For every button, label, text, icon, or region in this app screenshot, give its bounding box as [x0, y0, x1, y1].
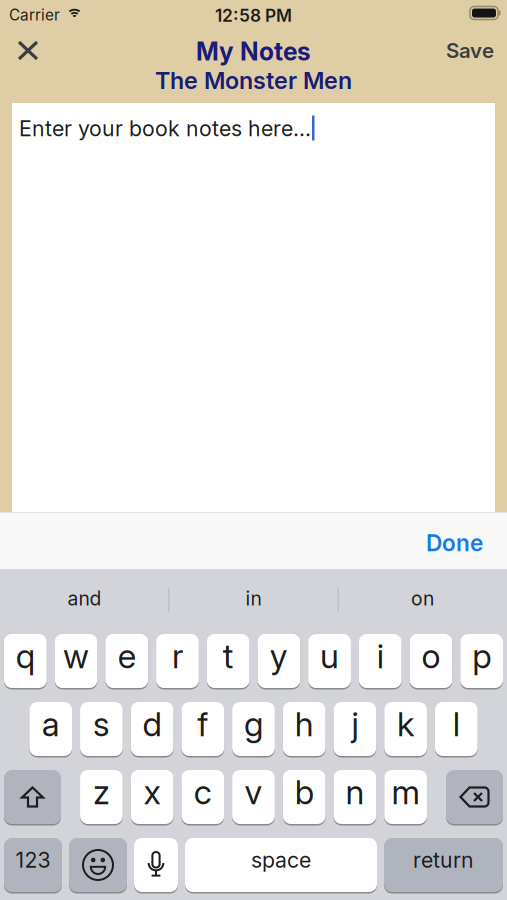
button[interactable]: m: [384, 770, 427, 824]
staticText: v: [244, 772, 262, 812]
staticText: My Notes: [196, 37, 311, 66]
button[interactable]: t: [207, 634, 249, 688]
button[interactable]: o: [410, 634, 452, 688]
button[interactable]: a: [29, 702, 72, 756]
button[interactable]: x: [131, 770, 173, 824]
staticText: g: [244, 704, 263, 744]
button[interactable]: Done: [426, 515, 507, 566]
staticText: 12:58 PM: [215, 5, 292, 26]
button[interactable]: g: [232, 702, 275, 756]
staticText: Done: [426, 529, 483, 557]
button[interactable]: v: [232, 770, 275, 824]
button[interactable]: on: [338, 569, 507, 634]
staticText: i: [377, 636, 384, 676]
button[interactable]: h: [283, 702, 326, 756]
button[interactable]: Save: [446, 30, 507, 71]
staticText: h: [295, 704, 314, 744]
button[interactable]: q: [4, 634, 47, 688]
staticText: q: [16, 636, 35, 676]
button[interactable]: 123: [4, 838, 62, 892]
staticText: c: [194, 772, 212, 812]
button[interactable]: y: [257, 634, 300, 688]
staticText: m: [392, 772, 420, 812]
button[interactable]: d: [131, 702, 173, 756]
staticText: on: [411, 587, 434, 610]
button[interactable]: and: [0, 569, 169, 634]
staticText: space: [251, 847, 311, 873]
button[interactable]: k: [384, 702, 427, 756]
button[interactable]: f: [181, 702, 224, 756]
button[interactable]: l: [435, 702, 478, 756]
button[interactable]: c: [181, 770, 224, 824]
button[interactable]: Emoji: [69, 838, 127, 892]
staticText: return: [413, 847, 474, 873]
staticText: n: [345, 772, 364, 812]
button[interactable]: e: [105, 634, 148, 688]
button[interactable]: w: [55, 634, 97, 688]
staticText: and: [67, 587, 101, 610]
staticText: j: [351, 704, 358, 744]
button[interactable]: u: [308, 634, 351, 688]
staticText: l: [453, 704, 460, 744]
staticText: w: [63, 636, 89, 676]
button[interactable]: Dictate: [134, 838, 178, 892]
staticText: p: [472, 636, 491, 676]
button[interactable]: r: [156, 634, 199, 688]
staticText: x: [144, 772, 161, 812]
staticText: e: [118, 636, 136, 676]
staticText: The Monster Men: [155, 66, 352, 95]
staticText: Enter your book notes here...: [19, 115, 311, 141]
staticText: d: [143, 704, 162, 744]
staticText: r: [172, 636, 183, 676]
button[interactable]: b: [283, 770, 326, 824]
button[interactable]: return: [384, 838, 503, 892]
staticText: y: [270, 636, 288, 676]
staticText: b: [295, 772, 314, 812]
button[interactable]: p: [460, 634, 503, 688]
staticText: z: [93, 772, 110, 812]
staticText: t: [223, 636, 234, 676]
staticText: f: [197, 704, 208, 744]
staticText: k: [397, 704, 414, 744]
button[interactable]: j: [334, 702, 376, 756]
staticText: s: [93, 704, 110, 744]
button[interactable]: in: [169, 569, 338, 634]
staticText: a: [42, 704, 60, 744]
button[interactable]: z: [80, 770, 123, 824]
button[interactable]: n: [334, 770, 376, 824]
button[interactable]: Delete: [446, 770, 503, 824]
staticText: o: [421, 636, 440, 676]
staticText: Carrier: [9, 6, 60, 24]
staticText: u: [320, 636, 339, 676]
staticText: 123: [15, 847, 50, 873]
button[interactable]: Close: [0, 33, 38, 68]
button[interactable]: space: [185, 838, 377, 892]
button[interactable]: s: [80, 702, 123, 756]
button[interactable]: Shift: [4, 770, 61, 824]
button[interactable]: i: [359, 634, 402, 688]
staticText: in: [245, 587, 261, 610]
staticText: Save: [446, 38, 494, 63]
